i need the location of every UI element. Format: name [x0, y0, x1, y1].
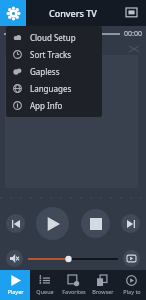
- button[interactable]: [5, 55, 138, 188]
- staticText: Player: [7, 288, 24, 295]
- staticText: 00:00: [124, 29, 142, 39]
- staticText: Browser: [92, 288, 114, 295]
- staticText: Gapless: [30, 66, 60, 77]
- button[interactable]: Cloud Setup: [6, 29, 102, 46]
- button[interactable]: [28, 250, 118, 267]
- staticText: Sort Tracks: [30, 49, 72, 60]
- staticText: Play to: [123, 288, 141, 295]
- button[interactable]: Menu: [0, 0, 26, 26]
- button[interactable]: Previous: [6, 214, 25, 233]
- button[interactable]: Shuffle: [128, 43, 140, 55]
- button[interactable]: Stop: [81, 209, 110, 238]
- button[interactable]: Languages: [6, 80, 102, 97]
- staticText: Queue: [36, 288, 54, 295]
- button[interactable]: Player: [0, 270, 30, 300]
- button[interactable]: Cast: [122, 4, 140, 22]
- staticText: Languages: [30, 83, 72, 94]
- button[interactable]: Output: [123, 250, 140, 267]
- staticText: Favorites: [62, 288, 86, 295]
- button[interactable]: Browser: [88, 270, 117, 300]
- button[interactable]: Queue: [30, 270, 59, 300]
- button[interactable]: Next: [121, 214, 140, 233]
- staticText: App Info: [30, 100, 63, 111]
- button[interactable]: Sort Tracks: [6, 46, 102, 63]
- button[interactable]: App Info: [6, 97, 102, 114]
- button[interactable]: Play: [36, 207, 69, 240]
- button[interactable]: Play to: [117, 270, 146, 300]
- staticText: Convers TV: [49, 7, 97, 19]
- button[interactable]: Mute: [6, 250, 23, 267]
- button[interactable]: Favorites: [59, 270, 88, 300]
- button[interactable]: Gapless: [6, 63, 102, 80]
- staticText: Cloud Setup: [30, 32, 76, 43]
